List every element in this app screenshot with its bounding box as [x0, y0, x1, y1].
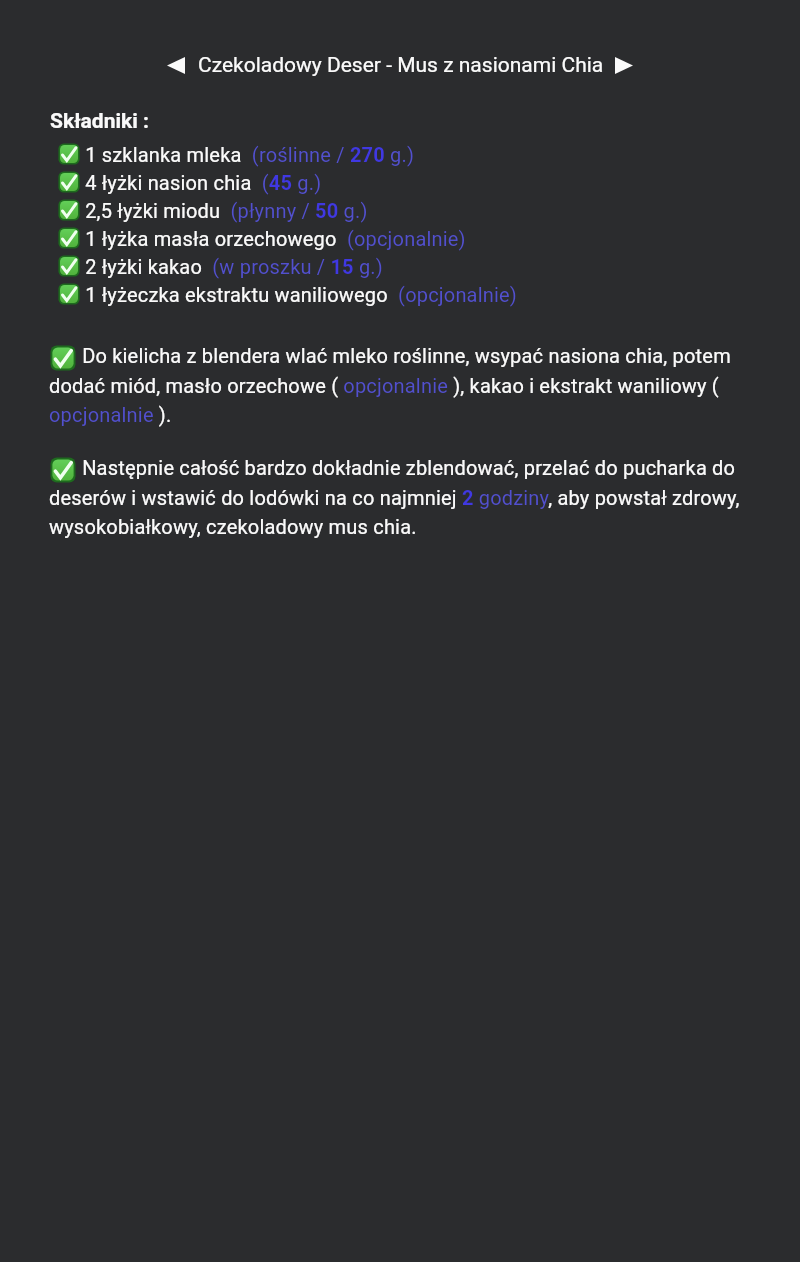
staticText: ✅ 4 łyżki nasion chia (45 g.) [58, 171, 322, 194]
button[interactable]: ✅ Do kielicha z blendera wlać mleko rośl… [49, 340, 752, 428]
staticText: ✅ 2 łyżki kakao (w proszku / 15 g.) [58, 255, 383, 278]
button[interactable]: Next recipe [607, 50, 641, 80]
staticText: ✅ 2,5 łyżki miodu (płynny / 50 g.) [58, 199, 368, 222]
button[interactable]: ✅ 4 łyżki nasion chia (45 g.) [50, 168, 750, 196]
button[interactable]: ✅ 2,5 łyżki miodu (płynny / 50 g.) [50, 196, 750, 224]
button[interactable]: Previous recipe [159, 50, 193, 80]
button[interactable]: ✅ 1 łyżka masła orzechowego (opcjonalnie… [50, 224, 750, 252]
staticText: ✅ Następnie całość bardzo dokładnie zble… [49, 452, 752, 540]
staticText: ✅ 1 łyżeczka ekstraktu waniliowego (opcj… [58, 283, 517, 306]
staticText: ✅ 1 łyżka masła orzechowego (opcjonalnie… [58, 227, 466, 250]
staticText: Składniki : [50, 109, 149, 134]
button[interactable]: ✅ 2 łyżki kakao (w proszku / 15 g.) [50, 252, 750, 280]
button[interactable]: ✅ 1 szklanka mleka (roślinne / 270 g.) [50, 140, 750, 168]
button[interactable]: ✅ Następnie całość bardzo dokładnie zble… [49, 452, 752, 540]
button[interactable]: ✅ 1 łyżeczka ekstraktu waniliowego (opcj… [50, 280, 750, 308]
staticText: ✅ Do kielicha z blendera wlać mleko rośl… [49, 340, 752, 428]
staticText: ✅ 1 szklanka mleka (roślinne / 270 g.) [58, 143, 415, 166]
staticText: Czekoladowy Deser - Mus z nasionami Chia [198, 53, 604, 78]
